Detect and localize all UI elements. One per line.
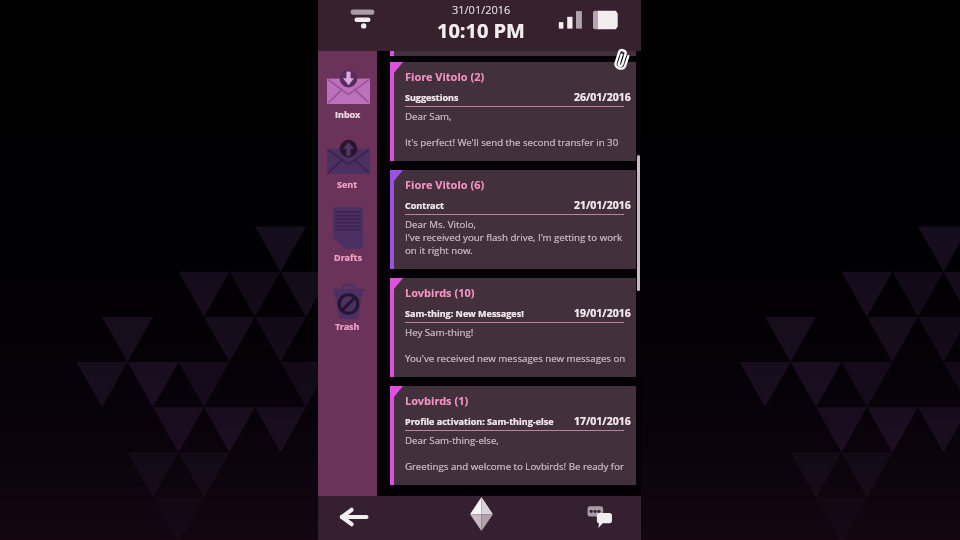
staticText: 10:10 PM [437, 17, 525, 44]
button[interactable]: Messages [583, 500, 617, 530]
staticText: Sam-thing: New Messages! [405, 307, 524, 319]
staticText: Dear Ms. Vitolo, [405, 218, 476, 231]
staticText: Drafts [334, 251, 362, 263]
staticText: Inbox [335, 108, 361, 120]
button[interactable]: Fiore Vitolo (2) [390, 62, 636, 161]
staticText: 31/01/2016 [452, 2, 511, 17]
staticText: Lovbirds (1) [405, 393, 469, 408]
button[interactable]: Fiore Vitolo (6) [390, 170, 636, 269]
staticText: You've received new messages new message… [405, 352, 626, 365]
button[interactable]: Trash [318, 283, 377, 332]
button[interactable]: Attachment [610, 47, 635, 72]
button[interactable]: Back [335, 503, 371, 531]
staticText: Suggestions [405, 91, 459, 103]
staticText: Fiore Vitolo (2) [405, 69, 485, 84]
staticText: 19/01/2016 [574, 306, 631, 320]
staticText: It's perfect! We'll send the second tran… [405, 136, 619, 149]
staticText: Profile activation: Sam-thing-else [405, 415, 554, 427]
button[interactable]: Drafts [318, 206, 377, 263]
button[interactable]: Network [344, 2, 380, 36]
staticText: 21/01/2016 [574, 198, 631, 212]
staticText: Contract [405, 199, 445, 211]
staticText: Dear Sam, [405, 110, 452, 123]
button[interactable]: Lovbirds (1) [390, 386, 636, 485]
staticText: 26/01/2016 [574, 90, 631, 104]
staticText: Dear Sam-thing-else, [405, 434, 499, 447]
staticText: Hey Sam-thing! [405, 326, 474, 339]
button[interactable]: Inbox [318, 66, 377, 120]
staticText: I've received your flash drive, I'm gett… [405, 231, 623, 244]
staticText: Greetings and welcome to Lovbirds! Be re… [405, 460, 624, 473]
button[interactable]: Sent [318, 136, 377, 190]
staticText: Lovbirds (10) [405, 285, 475, 300]
staticText: Fiore Vitolo (6) [405, 177, 485, 192]
staticText: 17/01/2016 [574, 414, 631, 428]
button[interactable]: Home [464, 495, 498, 533]
button[interactable]: Lovbirds (10) [390, 278, 636, 377]
staticText: Sent [337, 178, 358, 190]
staticText: on it right now. [405, 244, 473, 257]
staticText: Trash [335, 320, 360, 332]
